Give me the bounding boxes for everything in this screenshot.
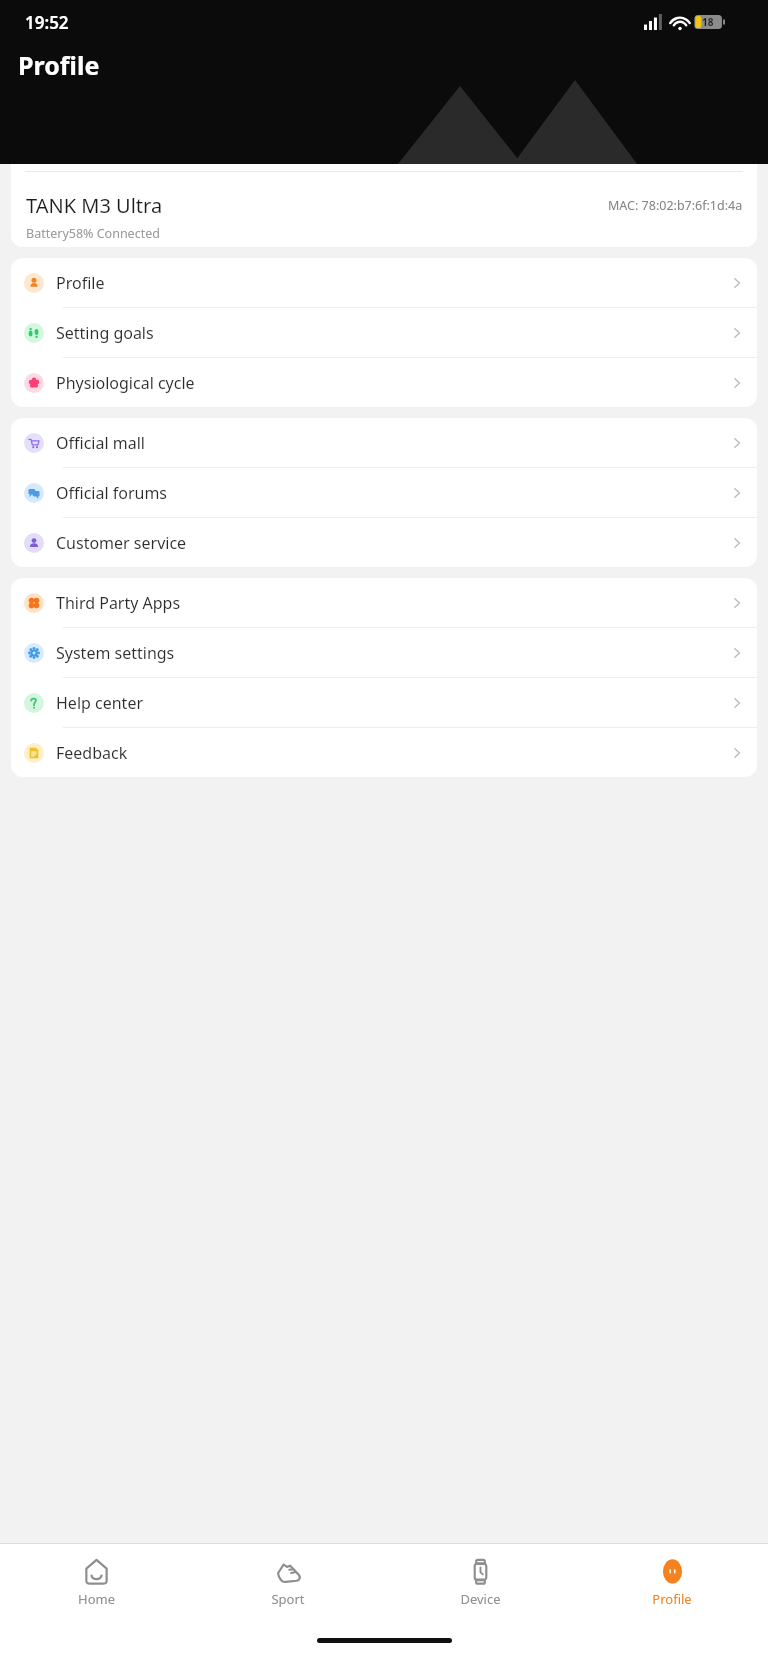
- staticText: Device: [460, 1590, 501, 1608]
- button[interactable]: TANK M3 Ultra: [11, 164, 757, 247]
- button[interactable]: Setting goals: [11, 308, 757, 357]
- button[interactable]: Sport: [192, 1544, 384, 1631]
- staticText: MAC: 78:02:b7:6f:1d:4a: [608, 197, 743, 214]
- button[interactable]: Physiological cycle: [11, 358, 757, 407]
- button[interactable]: Customer service: [11, 518, 757, 567]
- button[interactable]: Official forums: [11, 468, 757, 517]
- button[interactable]: Official mall: [11, 418, 757, 467]
- button[interactable]: Home: [0, 1544, 192, 1631]
- button[interactable]: Profile: [576, 1544, 768, 1631]
- staticText: Home: [78, 1590, 115, 1608]
- staticText: 19:52: [25, 11, 69, 34]
- staticText: 18: [702, 15, 714, 29]
- button[interactable]: System settings: [11, 628, 757, 677]
- staticText: System settings: [56, 642, 175, 664]
- staticText: Profile: [18, 48, 100, 82]
- staticText: Setting goals: [56, 322, 154, 344]
- staticText: Customer service: [56, 532, 187, 554]
- staticText: Battery58% Connected: [26, 225, 160, 242]
- button[interactable]: Help center: [11, 678, 757, 727]
- staticText: Physiological cycle: [56, 372, 195, 394]
- staticText: Official mall: [56, 432, 145, 454]
- staticText: Sport: [271, 1590, 305, 1608]
- staticText: Profile: [56, 272, 105, 294]
- button[interactable]: Feedback: [11, 728, 757, 777]
- staticText: TANK M3 Ultra: [26, 192, 163, 219]
- staticText: Profile: [652, 1590, 692, 1608]
- staticText: Official forums: [56, 482, 168, 504]
- button[interactable]: Device: [384, 1544, 576, 1631]
- staticText: Help center: [56, 692, 144, 714]
- staticText: Third Party Apps: [56, 592, 181, 614]
- button[interactable]: Third Party Apps: [11, 578, 757, 627]
- staticText: Feedback: [56, 742, 128, 764]
- button[interactable]: Profile: [11, 258, 757, 307]
